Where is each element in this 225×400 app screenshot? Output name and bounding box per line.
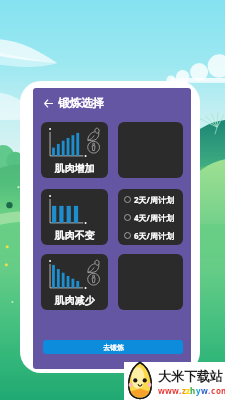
button[interactable]: 锻炼选择 (58, 92, 104, 114)
staticText: 肌肉减少 (41, 294, 108, 307)
staticText: 肌肉不变 (41, 229, 108, 242)
button[interactable]: 去锻炼 (43, 340, 183, 354)
staticText: 锻炼选择 (58, 96, 104, 110)
staticText: o (216, 385, 221, 396)
button[interactable] (118, 122, 183, 178)
staticText: 去锻炼 (103, 343, 124, 352)
staticText: m (221, 385, 225, 396)
button[interactable] (118, 254, 183, 310)
staticText: h (190, 385, 196, 396)
staticText: . (208, 385, 211, 396)
staticText: z (182, 385, 186, 396)
button[interactable]: Back (37, 92, 59, 114)
staticText: 肌肉增加 (41, 162, 108, 175)
staticText: w (165, 385, 172, 396)
button[interactable]: 肌肉增加 (41, 122, 108, 178)
staticText: . (179, 385, 182, 396)
staticText: 4天/周计划 (134, 212, 174, 223)
button[interactable]: 肌肉不变 (41, 189, 108, 245)
button[interactable]: 肌肉减少 (41, 254, 108, 310)
staticText: 大米下载站 (158, 368, 223, 384)
button[interactable]: 4天/周计划 (124, 209, 183, 225)
staticText: y (196, 385, 201, 396)
staticText: c (211, 385, 216, 396)
staticText: 2天/周计划 (134, 194, 174, 205)
staticText: z (186, 385, 190, 396)
button[interactable]: 2天/周计划 (124, 191, 183, 207)
staticText: w (158, 385, 165, 396)
staticText: w (172, 385, 179, 396)
staticText: w (201, 385, 208, 396)
staticText: 6天/周计划 (134, 230, 174, 241)
button[interactable]: 6天/周计划 (124, 227, 183, 243)
